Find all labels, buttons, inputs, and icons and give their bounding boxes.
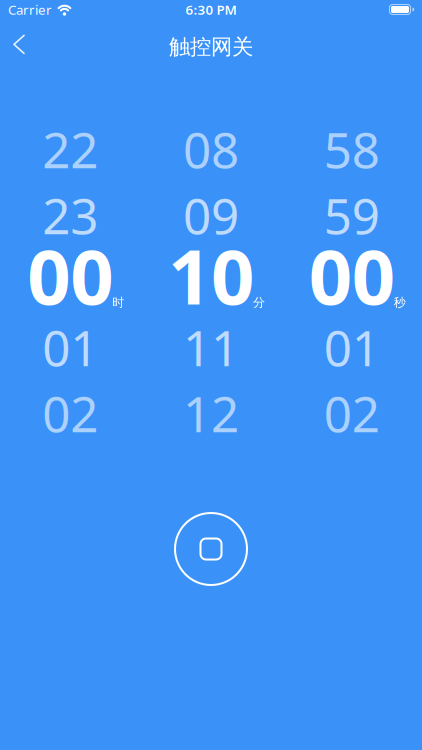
button[interactable] — [174, 512, 248, 586]
staticText: 00 — [309, 224, 395, 325]
staticText: 分 — [253, 295, 265, 310]
staticText: 08 — [183, 116, 239, 182]
staticText: 02 — [42, 380, 98, 446]
staticText: Carrier — [8, 1, 52, 18]
staticText: 23 — [42, 182, 98, 248]
staticText: 00 — [27, 224, 113, 325]
staticText: 01 — [324, 314, 380, 380]
staticText: 58 — [324, 116, 380, 182]
staticText: 秒 — [394, 295, 406, 310]
staticText: 22 — [42, 116, 98, 182]
button[interactable] — [0, 25, 37, 69]
staticText: 59 — [324, 182, 380, 248]
staticText: 01 — [42, 314, 98, 380]
staticText: 11 — [183, 314, 239, 380]
staticText: 12 — [183, 380, 239, 446]
staticText: 02 — [324, 380, 380, 446]
staticText: 09 — [183, 182, 239, 248]
staticText: 时 — [112, 295, 124, 310]
staticText: 触控网关 — [169, 34, 253, 60]
staticText: 10 — [168, 224, 254, 325]
staticText: 6:30 PM — [185, 1, 236, 18]
